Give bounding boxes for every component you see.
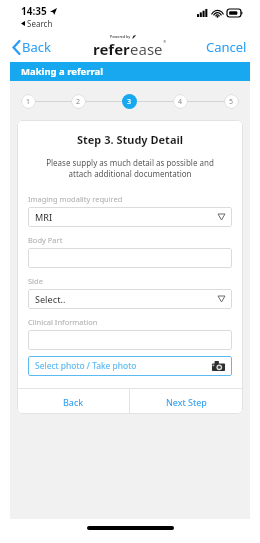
staticText: 14:35 <box>21 4 47 18</box>
staticText: ® <box>163 39 167 44</box>
other: Open dropdown <box>218 214 225 220</box>
staticText: 4 <box>178 97 183 107</box>
button[interactable]: 3 <box>122 94 137 109</box>
button[interactable]: Back <box>17 389 129 414</box>
button[interactable]: Select.. <box>28 289 232 309</box>
staticText: Body Part <box>28 235 63 245</box>
staticText: Select photo / Take photo <box>35 360 137 372</box>
staticText: Next Step <box>166 396 207 408</box>
button[interactable]: Select photo / Take photo <box>28 356 232 376</box>
button[interactable]: Back <box>9 35 55 59</box>
staticText: 3 <box>127 97 132 107</box>
button[interactable]: 5 <box>224 94 239 109</box>
staticText: 5 <box>229 97 234 107</box>
button[interactable] <box>28 248 232 268</box>
button[interactable] <box>28 330 232 350</box>
button[interactable]: 4 <box>173 94 188 109</box>
staticText: refer <box>93 39 130 59</box>
staticText: Step 3. Study Detail <box>17 132 243 147</box>
other: Open dropdown <box>218 296 225 302</box>
staticText: Please supply as much detail as possible… <box>27 157 233 180</box>
button[interactable]: 1 <box>21 94 36 109</box>
staticText: Side <box>28 276 43 286</box>
staticText: MRI <box>35 211 53 223</box>
staticText: Powered by <box>110 34 131 39</box>
button[interactable]: Cancel <box>202 35 251 59</box>
staticText: 2 <box>76 97 81 107</box>
button[interactable]: 2 <box>71 94 86 109</box>
staticText: Making a referral <box>21 65 104 78</box>
button[interactable]: MRI <box>28 207 232 227</box>
button[interactable]: Next Step <box>130 389 243 414</box>
staticText: Back <box>63 396 84 408</box>
staticText: Search <box>27 18 53 29</box>
staticText: Imaging modality required <box>28 194 123 204</box>
staticText: Clinical Information <box>28 317 98 327</box>
staticText: ease <box>130 39 163 59</box>
staticText: Back <box>22 38 51 56</box>
staticText: Select.. <box>35 293 66 305</box>
staticText: 1 <box>26 97 31 107</box>
staticText: Cancel <box>206 38 247 56</box>
other: Take photo <box>212 361 225 371</box>
